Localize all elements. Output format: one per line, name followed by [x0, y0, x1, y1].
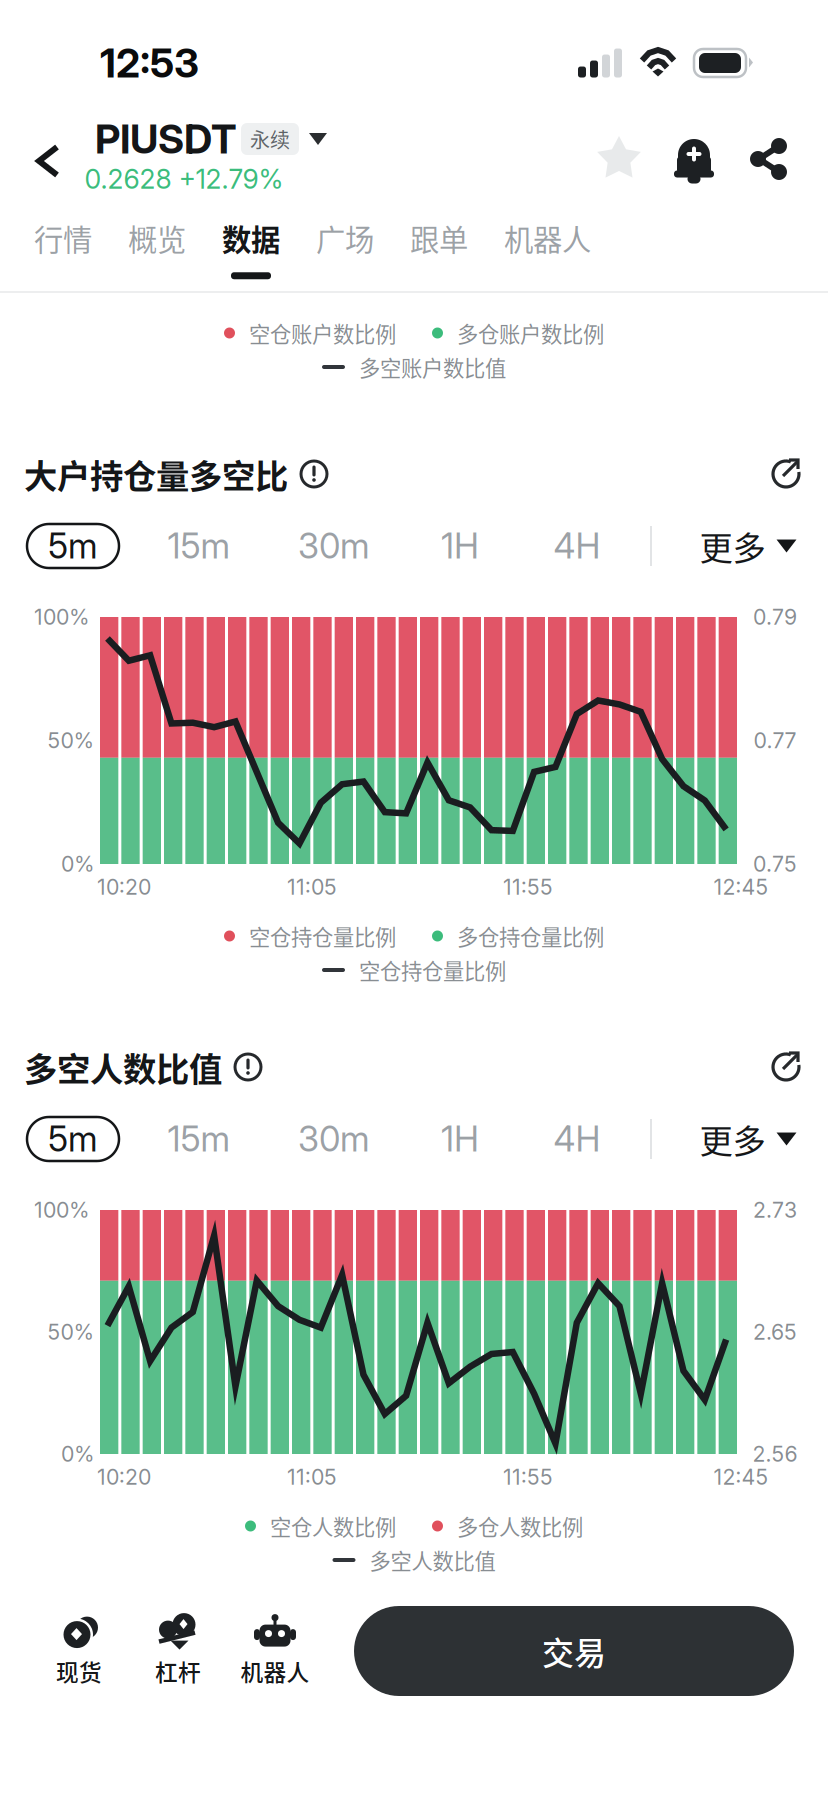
staticText: 50% [47, 728, 94, 753]
staticText: 空仓持仓量比例 [249, 921, 396, 951]
staticText: 2.56 [752, 1441, 797, 1467]
button[interactable]: 30m [279, 521, 389, 571]
button[interactable]: 4H [527, 521, 627, 571]
staticText: 0.79 [753, 604, 797, 630]
staticText: 0.77 [753, 728, 796, 753]
staticText: 大户持仓量多空比 [24, 450, 288, 498]
staticText: 多空账户数比值 [359, 352, 506, 382]
staticText: 15m [167, 1118, 230, 1160]
staticText: 5m [48, 1118, 98, 1160]
button[interactable]: Add to favourites [574, 114, 664, 204]
staticText: 50% [47, 1319, 94, 1345]
button[interactable]: 5m [27, 524, 119, 568]
staticText: 4H [553, 525, 600, 567]
staticText: PIUSDT [95, 115, 237, 163]
button[interactable]: 更多 [683, 521, 812, 571]
button[interactable]: 15m [144, 1114, 254, 1164]
staticText: 15m [167, 525, 230, 567]
staticText: 1H [441, 1118, 479, 1160]
staticText: 更多 [699, 522, 765, 570]
staticText: 多仓人数比例 [457, 1511, 583, 1541]
button[interactable]: 15m [144, 521, 254, 571]
button[interactable]: 30m [279, 1114, 389, 1164]
staticText: 100% [34, 604, 90, 630]
staticText: 现货 [56, 1655, 102, 1687]
staticText: 多空人数比值 [24, 1043, 222, 1091]
button[interactable]: 跟单 [392, 203, 486, 293]
staticText: 空仓持仓量比例 [359, 955, 506, 985]
button[interactable]: 概览 [110, 203, 204, 293]
button[interactable]: 机器人 [486, 203, 609, 293]
staticText: 30m [298, 1118, 370, 1160]
staticText: 杠杆 [155, 1655, 201, 1687]
button[interactable]: 机器人 [217, 1596, 333, 1706]
staticText: 11:05 [287, 1464, 337, 1490]
staticText: 0% [61, 851, 95, 877]
button[interactable]: 1H [410, 1114, 510, 1164]
staticText: 多空人数比值 [369, 1545, 495, 1575]
button[interactable]: 行情 [16, 203, 110, 293]
staticText: 行情 [34, 217, 92, 259]
staticText: 10:20 [97, 1464, 151, 1490]
staticText: 概览 [128, 217, 186, 259]
button[interactable]: 1H [410, 521, 510, 571]
button[interactable]: Share [724, 114, 814, 204]
staticText: 12:45 [713, 874, 768, 900]
staticText: 1H [441, 525, 479, 567]
staticText: 多仓账户数比例 [457, 318, 604, 348]
staticText: 0% [61, 1441, 95, 1467]
staticText: 机器人 [504, 217, 591, 259]
staticText: 2.73 [753, 1197, 797, 1223]
staticText: 12:45 [713, 1464, 768, 1490]
button[interactable]: 5m [27, 1117, 119, 1161]
staticText: 0.2628 +12.79% [84, 163, 283, 195]
staticText: 多仓持仓量比例 [457, 921, 604, 951]
staticText: 30m [298, 525, 370, 567]
staticText: 永续 [250, 124, 290, 153]
staticText: 11:05 [287, 874, 337, 900]
button[interactable]: 更多 [683, 1114, 812, 1164]
button[interactable]: Price alert [649, 114, 739, 204]
button[interactable]: Open 多空人数比值 chart [758, 1039, 814, 1095]
staticText: 更多 [699, 1115, 765, 1163]
staticText: 空仓人数比例 [270, 1511, 396, 1541]
button[interactable]: 杠杆 [125, 1596, 231, 1706]
staticText: 机器人 [240, 1655, 309, 1687]
staticText: 11:55 [503, 1464, 553, 1490]
staticText: 数据 [222, 217, 280, 259]
staticText: 2.65 [753, 1319, 797, 1345]
staticText: 11:55 [503, 874, 553, 900]
staticText: 交易 [542, 1628, 606, 1674]
staticText: 跟单 [410, 217, 468, 259]
staticText: 0.75 [753, 851, 797, 877]
button[interactable]: Back [13, 116, 83, 206]
button[interactable]: 现货 [24, 1596, 134, 1706]
staticText: 5m [48, 525, 98, 567]
button[interactable]: 4H [527, 1114, 627, 1164]
staticText: 12:53 [100, 39, 199, 87]
button[interactable]: 广场 [298, 203, 392, 293]
staticText: 10:20 [97, 874, 151, 900]
staticText: 广场 [316, 217, 374, 259]
staticText: 空仓账户数比例 [249, 318, 396, 348]
button[interactable]: 交易 [354, 1606, 794, 1696]
button[interactable]: Open 大户持仓量多空比 chart [758, 446, 814, 502]
button[interactable]: 数据 [204, 203, 298, 293]
staticText: 4H [553, 1118, 600, 1160]
staticText: 100% [34, 1197, 90, 1223]
